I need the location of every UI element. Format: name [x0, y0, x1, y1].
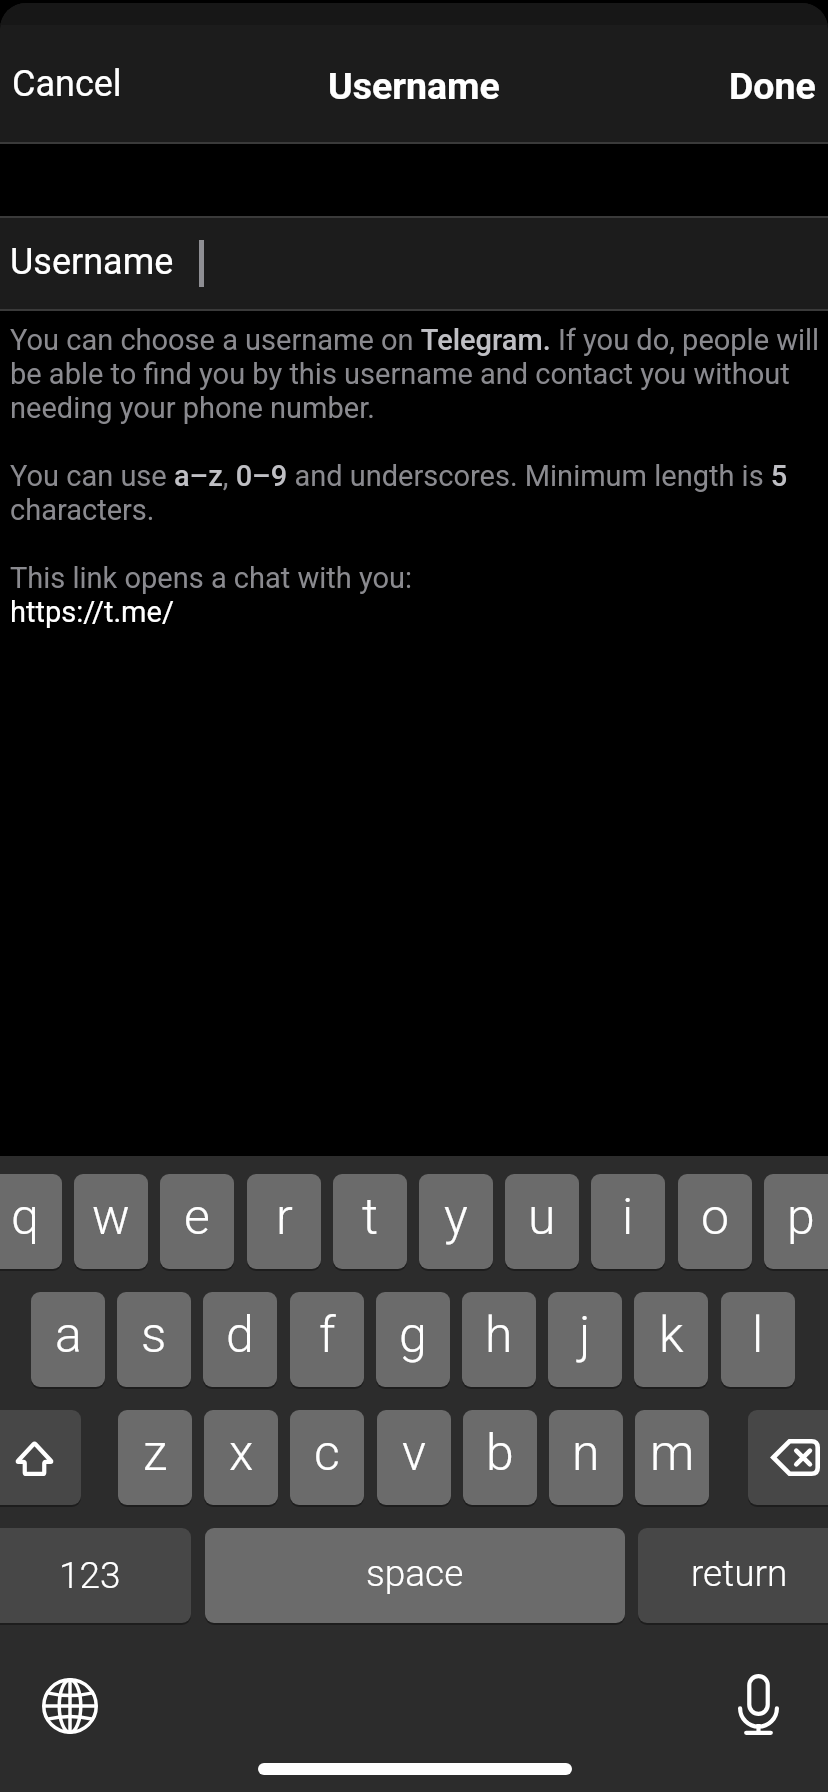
button[interactable]: e	[160, 1174, 234, 1269]
button[interactable]: i	[591, 1174, 665, 1269]
staticText: f	[319, 1306, 336, 1365]
staticText: space	[366, 1552, 464, 1595]
button[interactable]: h	[462, 1292, 536, 1387]
staticText: d	[226, 1306, 254, 1365]
staticText: Username	[10, 241, 174, 283]
staticText: s	[141, 1306, 167, 1365]
staticText: n	[572, 1424, 600, 1483]
button[interactable]: g	[376, 1292, 450, 1387]
staticText: Done	[729, 64, 816, 108]
staticText: o	[701, 1188, 730, 1247]
staticText: Username	[328, 64, 500, 108]
button[interactable]: d	[203, 1292, 277, 1387]
staticText: p	[787, 1188, 815, 1247]
button[interactable]: j	[548, 1292, 622, 1387]
staticText: You can use a–z, 0–9 and underscores. Mi…	[10, 459, 822, 527]
staticText: g	[399, 1306, 427, 1365]
button[interactable]: o	[678, 1174, 752, 1269]
staticText: t	[362, 1188, 379, 1247]
button[interactable]: r	[247, 1174, 321, 1269]
button[interactable]: s	[117, 1292, 191, 1387]
button[interactable]: z	[118, 1410, 192, 1505]
staticText: x	[229, 1424, 254, 1483]
staticText: e	[184, 1188, 210, 1247]
staticText: a	[55, 1306, 82, 1365]
staticText: w	[92, 1188, 130, 1247]
button[interactable]: Dictation	[724, 1670, 792, 1738]
staticText: k	[659, 1306, 684, 1365]
staticText: c	[314, 1424, 340, 1483]
button[interactable]: u	[505, 1174, 579, 1269]
button[interactable]: l	[721, 1292, 795, 1387]
staticText: 123	[59, 1554, 121, 1597]
staticText: l	[752, 1306, 764, 1365]
button[interactable]: m	[635, 1410, 709, 1505]
button[interactable]: q	[0, 1174, 62, 1269]
button[interactable]: x	[204, 1410, 278, 1505]
staticText: You can choose a username on Telegram. I…	[10, 323, 822, 425]
button[interactable]: Change keyboard language	[36, 1672, 104, 1740]
staticText: https://t.me/	[10, 595, 174, 629]
button[interactable]: Cancel	[0, 57, 146, 111]
button[interactable]: y	[419, 1174, 493, 1269]
staticText: z	[143, 1424, 168, 1483]
button[interactable]: Backspace	[748, 1410, 828, 1505]
staticText: m	[650, 1424, 695, 1483]
button[interactable]: space	[205, 1528, 625, 1623]
staticText: Cancel	[12, 63, 122, 105]
button[interactable]: k	[634, 1292, 708, 1387]
staticText: This link opens a chat with you:	[10, 561, 413, 595]
button[interactable]: v	[377, 1410, 451, 1505]
button[interactable]: p	[764, 1174, 828, 1269]
staticText: return	[691, 1552, 788, 1595]
button[interactable]: n	[549, 1410, 623, 1505]
staticText: j	[579, 1306, 591, 1365]
staticText: h	[485, 1306, 513, 1365]
button[interactable]: Username	[0, 217, 828, 309]
button[interactable]: c	[290, 1410, 364, 1505]
button[interactable]: Shift	[0, 1410, 81, 1505]
button[interactable]: return	[638, 1528, 828, 1623]
staticText: y	[444, 1188, 468, 1247]
staticText: v	[402, 1424, 427, 1483]
button[interactable]: b	[463, 1410, 537, 1505]
staticText: i	[622, 1188, 634, 1247]
button[interactable]: f	[290, 1292, 364, 1387]
button[interactable]: 123	[0, 1528, 191, 1623]
staticText: b	[486, 1424, 514, 1483]
button[interactable]: w	[74, 1174, 148, 1269]
staticText: q	[11, 1188, 39, 1247]
staticText: u	[528, 1188, 556, 1247]
button[interactable]: t	[333, 1174, 407, 1269]
button[interactable]: a	[31, 1292, 105, 1387]
button[interactable]: Done	[705, 58, 828, 114]
staticText: r	[276, 1188, 293, 1247]
